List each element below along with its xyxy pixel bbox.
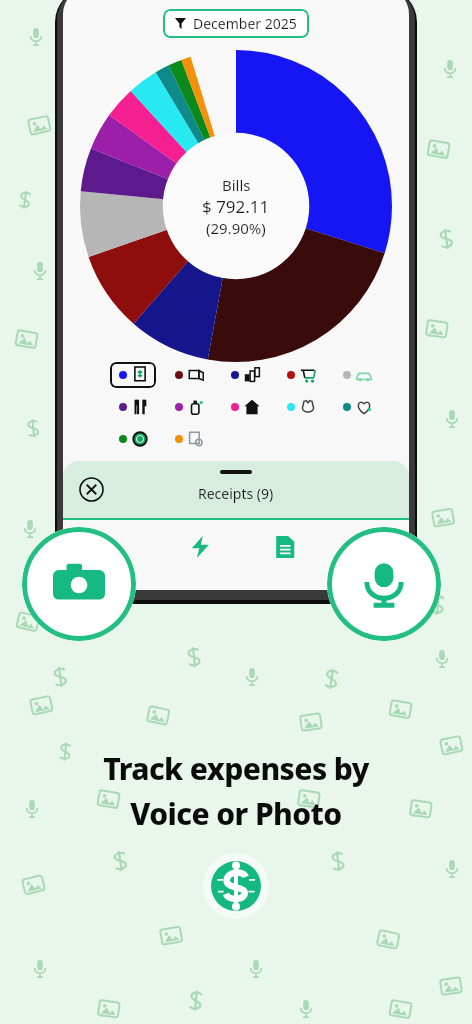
staticText: Track expenses by [103,748,369,789]
button[interactable]: Documents [270,532,300,562]
button[interactable]: Category 2 [166,362,212,388]
staticText: December 2025 [193,14,297,33]
staticText: (29.90%) [206,218,266,238]
button[interactable]: Category 8 [222,394,268,420]
button[interactable]: Category 12 [166,426,212,452]
button[interactable]: App logo [203,853,269,919]
button[interactable]: Category 7 [166,394,212,420]
button[interactable]: Category 1 [110,362,156,388]
button[interactable]: Close [63,461,409,518]
staticText: $ 792.11 [202,195,270,218]
button[interactable]: Category 10 [334,394,380,420]
button[interactable]: Close [79,477,104,502]
button[interactable]: Category 5 [334,362,380,388]
staticText: Receipts (9) [198,484,274,503]
button[interactable]: Take photo [22,527,136,641]
staticText: Voice or Photo [130,793,342,834]
staticText: Bills [222,175,251,195]
button[interactable]: Category 11 [110,426,156,452]
button[interactable]: Category 9 [278,394,324,420]
button[interactable]: Category 6 [110,394,156,420]
button[interactable]: December 2025 [163,9,309,38]
button[interactable]: Category 3 [222,362,268,388]
button[interactable]: Category 4 [278,362,324,388]
button[interactable]: Quick add [185,532,215,562]
button[interactable]: Record voice [327,527,441,641]
